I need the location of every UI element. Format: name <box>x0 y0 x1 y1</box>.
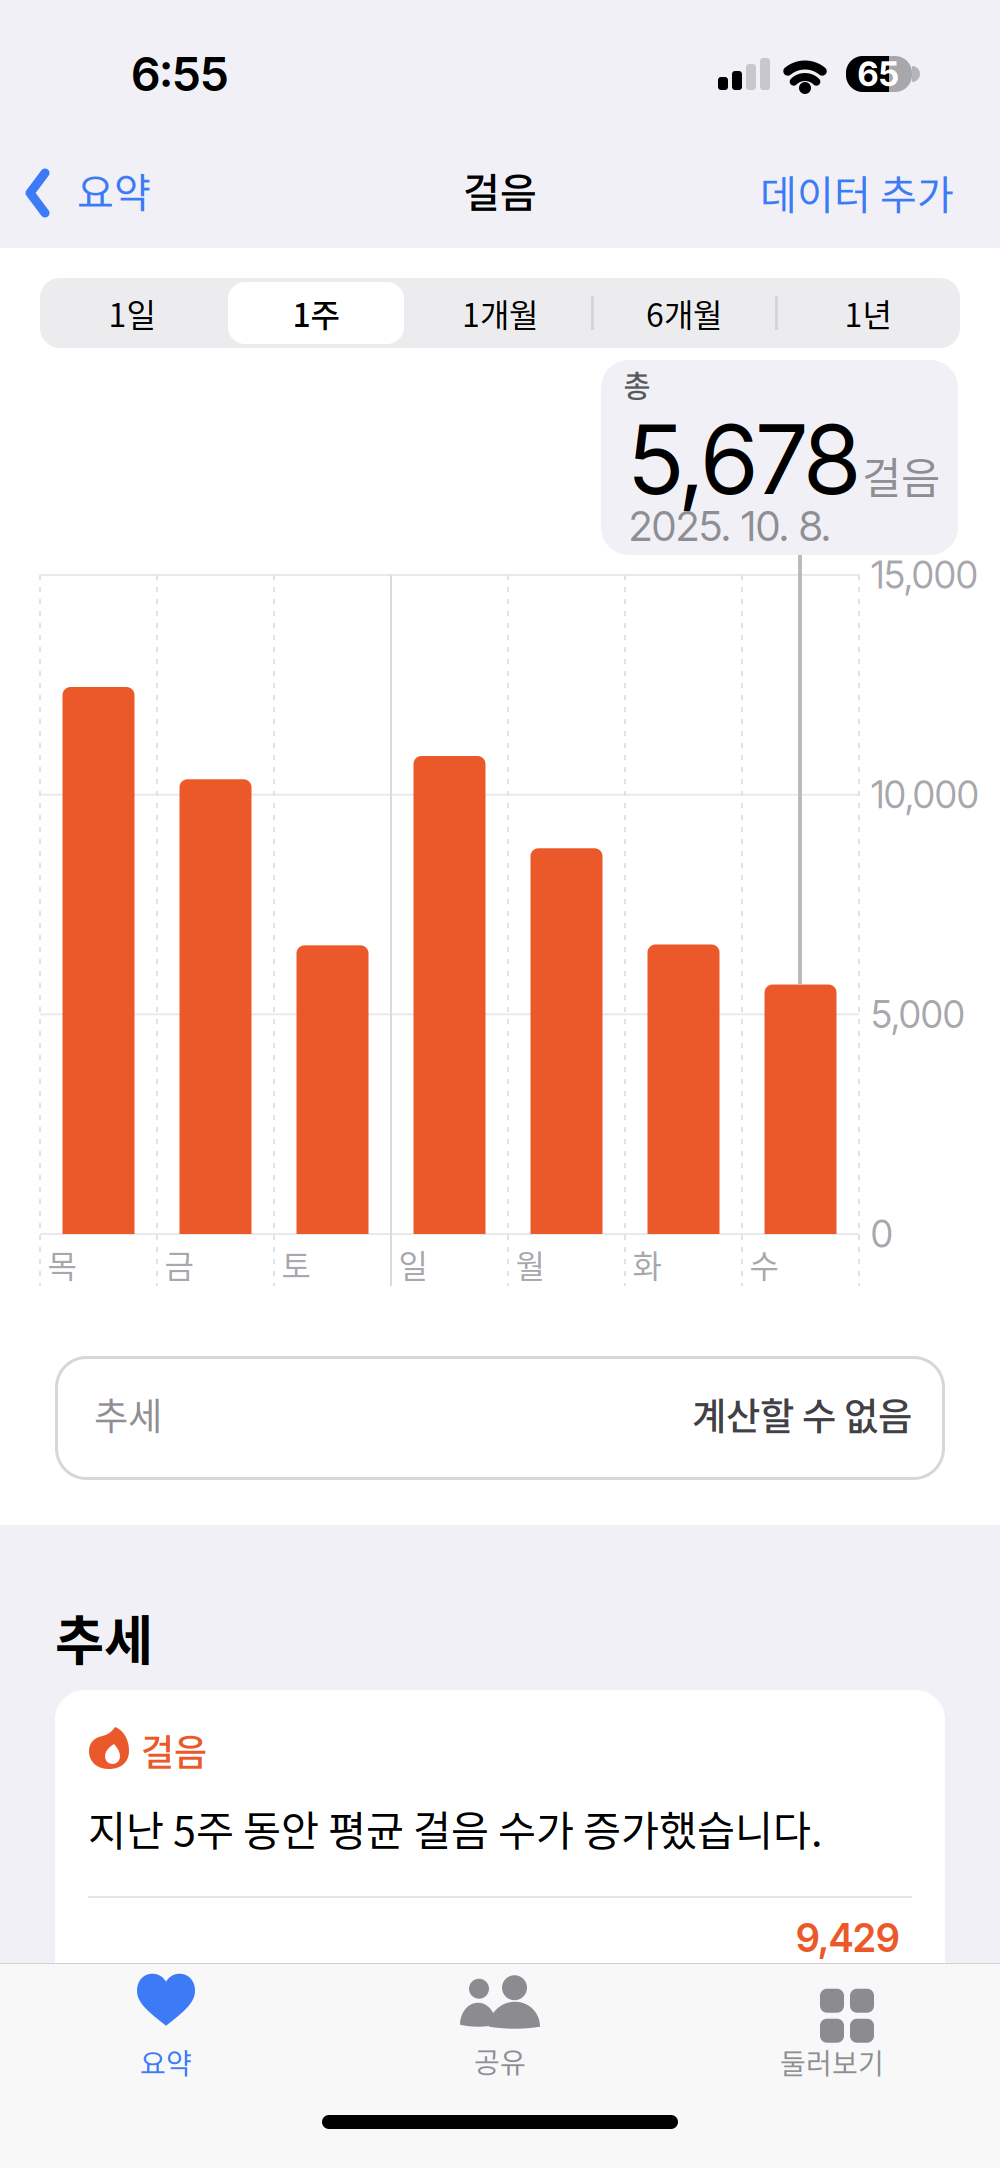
staticText: 0 <box>871 1211 893 1257</box>
staticText: 데이터 추가 <box>760 163 954 221</box>
staticText: 추세 <box>94 1387 162 1441</box>
button[interactable]: 걸음 <box>55 1690 945 2168</box>
staticText: 5,000 <box>871 992 965 1037</box>
staticText: 요약 <box>77 161 151 219</box>
staticText: 9,429 <box>796 1915 900 1961</box>
staticText: 일 <box>398 1241 427 1287</box>
staticText: 1개월 <box>462 290 538 336</box>
staticText: 월 <box>515 1241 544 1287</box>
button[interactable]: 둘러보기 <box>702 1968 962 2088</box>
button[interactable]: 공유 <box>370 1968 630 2088</box>
staticText: 목 <box>47 1241 76 1287</box>
staticText: 수 <box>749 1241 778 1287</box>
staticText: 금 <box>164 1241 193 1287</box>
staticText: 걸음 <box>862 444 940 506</box>
staticText: 1일 <box>108 290 155 336</box>
button[interactable]: 1주 <box>224 278 408 348</box>
staticText: 계산할 수 없음 <box>692 1387 912 1441</box>
staticText: 10,000 <box>871 772 979 817</box>
staticText: 2025. 10. 8. <box>629 501 831 551</box>
staticText: 걸음 <box>463 161 537 219</box>
staticText: 총 <box>623 363 650 405</box>
staticText: 둘러보기 <box>780 2042 884 2082</box>
button[interactable]: 데이터 추가 <box>717 143 997 241</box>
staticText: 1주 <box>292 290 339 336</box>
staticText: 토 <box>281 1241 310 1287</box>
staticText: 5,678 <box>629 401 859 517</box>
staticText: 걸음 <box>141 1724 207 1776</box>
staticText: 지난 5주 동안 평균 걸음 수가 증가했습니다. <box>88 1798 822 1858</box>
staticText: 1년 <box>844 290 891 336</box>
staticText: 요약 <box>140 2042 192 2082</box>
button[interactable]: 6개월 <box>592 278 776 348</box>
button[interactable]: 1일 <box>40 278 224 348</box>
button[interactable]: 1개월 <box>408 278 592 348</box>
staticText: 65 <box>857 54 898 94</box>
staticText: 15,000 <box>871 552 978 598</box>
staticText: 공유 <box>474 2041 526 2081</box>
button[interactable]: 추세 <box>55 1356 945 1480</box>
button[interactable]: 뒤로 <box>0 0 170 98</box>
staticText: 추세 <box>55 1598 153 1676</box>
staticText: 6:55 <box>131 46 228 102</box>
staticText: 화 <box>632 1241 661 1287</box>
button[interactable]: 요약 <box>36 1968 296 2088</box>
staticText: 6개월 <box>646 290 722 336</box>
button[interactable]: 1년 <box>776 278 960 348</box>
